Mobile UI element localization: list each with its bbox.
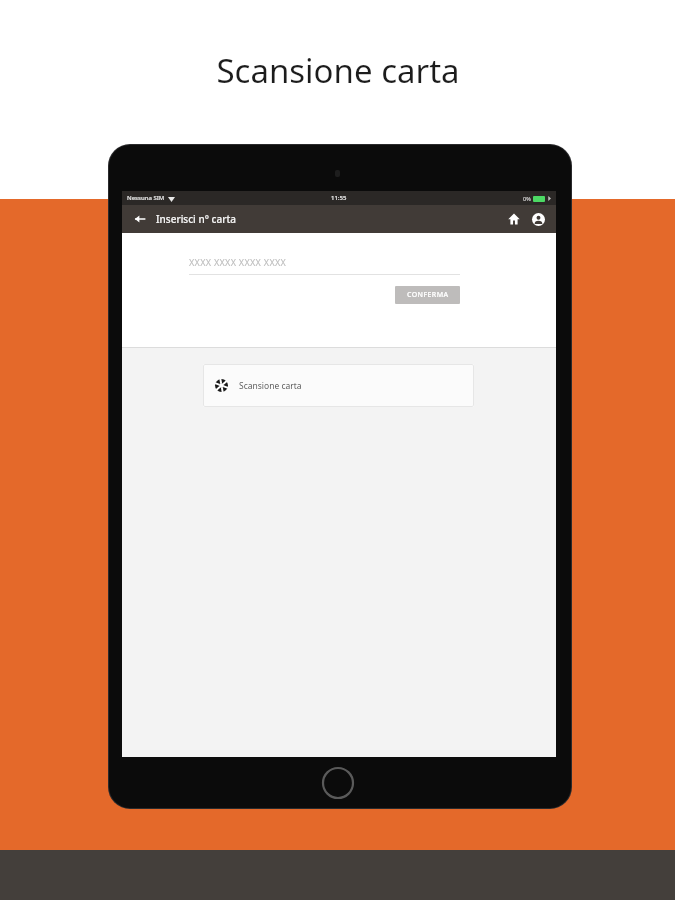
button[interactable]: Account — [527, 208, 549, 230]
button[interactable]: Home — [503, 208, 525, 230]
staticText: CONFERMA — [407, 290, 449, 300]
staticText: Scansione carta — [239, 380, 302, 392]
button[interactable]: CONFERMA — [395, 286, 460, 304]
button[interactable]: Indietro — [130, 209, 150, 229]
staticText: Nessuna SIM — [127, 194, 165, 202]
staticText: 11:55 — [331, 194, 347, 202]
staticText: Scansione carta — [216, 48, 460, 93]
staticText: Inserisci n° carta — [156, 212, 236, 226]
button[interactable]: Scansione carta — [203, 364, 474, 407]
staticText: 0% — [523, 195, 531, 202]
staticText: XXXX XXXX XXXX XXXX — [189, 256, 287, 268]
